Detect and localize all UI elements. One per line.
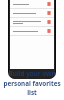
button[interactable]: Remove from favorites xyxy=(10,0,54,9)
button[interactable]: Remove from favorites xyxy=(10,18,54,27)
button[interactable]: Remove from favorites xyxy=(10,0,54,69)
staticText: Build your own xyxy=(8,69,56,78)
button[interactable]: Remove from favorites xyxy=(10,9,54,18)
button[interactable]: Remove from favorites xyxy=(10,27,54,36)
button[interactable]: Remove from favorites xyxy=(47,29,51,33)
button[interactable]: Remove from favorites xyxy=(47,20,51,24)
button[interactable]: Remove from favorites xyxy=(47,11,51,15)
staticText: personal favorites list xyxy=(1,79,63,97)
button[interactable]: Remove from favorites xyxy=(47,2,51,6)
